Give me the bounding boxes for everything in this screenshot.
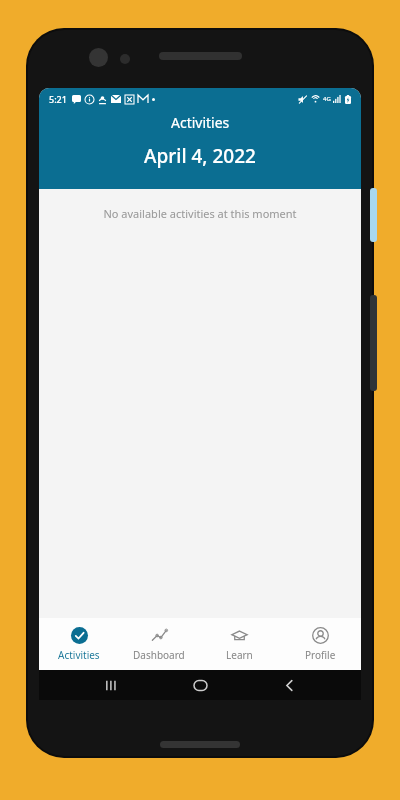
button[interactable]: Home bbox=[183, 670, 217, 700]
button[interactable]: Recent apps bbox=[94, 670, 128, 700]
button[interactable]: Activities bbox=[39, 618, 119, 670]
staticText: April 4, 2022 bbox=[144, 143, 256, 169]
staticText: Activities bbox=[171, 113, 230, 132]
button[interactable]: Profile bbox=[280, 618, 361, 670]
staticText: 4G bbox=[323, 95, 331, 103]
staticText: No available activities at this moment bbox=[103, 206, 297, 221]
staticText: Dashboard bbox=[133, 648, 185, 662]
button[interactable]: Learn bbox=[199, 618, 280, 670]
staticText: Profile bbox=[305, 648, 336, 662]
button[interactable]: Back bbox=[272, 670, 306, 700]
staticText: Learn bbox=[226, 648, 253, 662]
staticText: 5:21 bbox=[49, 93, 67, 105]
staticText: Activities bbox=[58, 648, 100, 662]
button[interactable]: Dashboard bbox=[119, 618, 199, 670]
